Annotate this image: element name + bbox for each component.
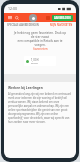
staticText: MIJN FAVORIETEN	[50, 23, 73, 27]
staticText: Je hebt nog geen favorieten. Druk op de …	[12, 31, 68, 39]
staticText: 1,00 €	[31, 58, 39, 62]
button[interactable]: Search	[14, 15, 20, 21]
button[interactable]: Menu	[7, 15, 13, 21]
staticText: favorieten	[33, 47, 48, 51]
button[interactable]: Logo	[29, 14, 37, 22]
staticText: Al generaties lang zijn wij een bekend e…	[8, 92, 72, 124]
staticText: een compatible in Retails aan te voegen.	[12, 39, 68, 47]
button[interactable]: 1,00 €	[24, 56, 56, 66]
staticText: AANMELDEN	[54, 16, 71, 20]
staticText: 12:00	[8, 6, 17, 11]
staticText: korting	[31, 62, 38, 65]
button[interactable]: AANMELDEN	[52, 15, 73, 21]
staticText: SPECIALE AANBIEDINGEN	[7, 23, 39, 27]
staticText: Werken bij Leerlingen	[8, 86, 43, 90]
